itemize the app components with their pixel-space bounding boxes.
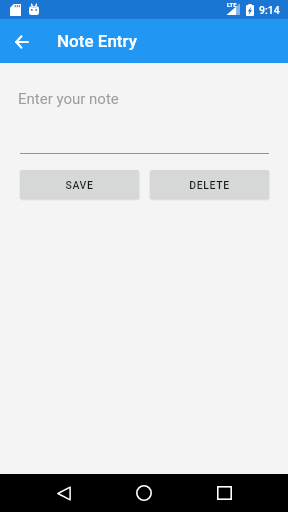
staticText: LTE [227,2,237,9]
staticText: Enter your note [18,90,119,108]
staticText: Note Entry [57,31,137,51]
button[interactable]: Home [128,477,160,509]
button[interactable]: DELETE [150,170,269,199]
button[interactable]: Back [48,477,80,509]
button[interactable]: SAVE [20,170,139,199]
staticText: SAVE [65,179,94,191]
button[interactable]: Enter your note [20,81,269,154]
staticText: 9:14 [259,4,280,16]
button[interactable]: Navigate up [4,23,40,59]
staticText: DELETE [189,179,230,191]
button[interactable]: Recent apps [208,477,240,509]
